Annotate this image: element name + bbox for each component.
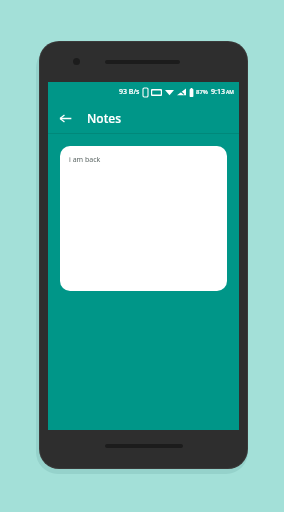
staticText: Notes [87,110,121,126]
staticText: 87% [196,88,208,96]
button[interactable]: Back [53,106,77,130]
staticText: 93 B/s [119,87,140,97]
staticText: 9:13 [211,87,225,97]
staticText: AM [226,89,234,96]
button[interactable]: i am back [60,146,227,291]
staticText: i am back [69,155,101,165]
